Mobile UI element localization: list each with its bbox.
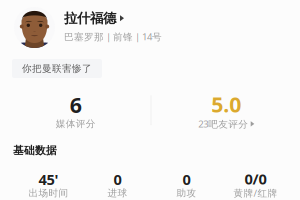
button[interactable]: 拉什福德 头像 <box>14 7 55 48</box>
button[interactable]: 拉什福德 <box>64 10 124 26</box>
staticText: 45' <box>38 169 58 189</box>
button[interactable]: 5.0 <box>151 90 300 130</box>
staticText: 媒体评分 <box>56 118 96 130</box>
staticText: 你把曼联害惨了 <box>22 62 92 75</box>
staticText: 拉什福德 <box>64 10 116 26</box>
staticText: 0 <box>113 169 121 189</box>
staticText: 巴塞罗那 | 前锋 | 14号 <box>64 30 162 43</box>
staticText: 23吧友评分 <box>198 117 248 130</box>
staticText: 出场时间 <box>28 187 68 199</box>
staticText: 5.0 <box>211 90 241 118</box>
staticText: 进球 <box>107 187 127 199</box>
staticText: 基础数据 <box>13 144 57 157</box>
staticText: 黄牌/红牌 <box>233 186 277 200</box>
staticText: 6 <box>70 90 82 119</box>
staticText: 0 <box>182 169 190 189</box>
staticText: 助攻 <box>176 187 196 199</box>
staticText: 0/0 <box>244 169 266 188</box>
